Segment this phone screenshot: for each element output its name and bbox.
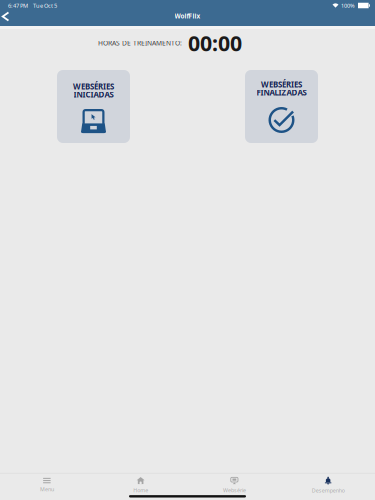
staticText: 100% — [341, 2, 355, 9]
staticText: HORAS DE TREINAMENTO: — [98, 39, 182, 47]
staticText: Menu — [40, 486, 54, 493]
staticText: WolfFlix — [174, 12, 200, 20]
staticText: Tue Oct 5 — [33, 2, 57, 9]
staticText: WEBSÉRIES — [261, 79, 302, 90]
staticText: 6:47 PM — [8, 2, 28, 9]
button[interactable]: Back — [0, 12, 16, 25]
staticText: 00:00 — [188, 29, 242, 57]
staticText: Home — [133, 487, 148, 494]
staticText: FINALIZADAS — [256, 87, 306, 98]
staticText: WEBSÉRIES — [73, 81, 114, 92]
staticText: Desempenho — [312, 487, 345, 494]
button[interactable]: Menu — [0, 476, 94, 495]
button[interactable]: Websérie — [187, 476, 281, 495]
button[interactable]: Desempenho — [281, 476, 375, 495]
button[interactable]: WEBSÉRIES — [245, 70, 318, 143]
staticText: Websérie — [223, 487, 246, 494]
button[interactable]: WEBSÉRIES — [57, 70, 130, 143]
button[interactable]: Home — [94, 476, 188, 495]
staticText: INICIADAS — [73, 89, 113, 100]
